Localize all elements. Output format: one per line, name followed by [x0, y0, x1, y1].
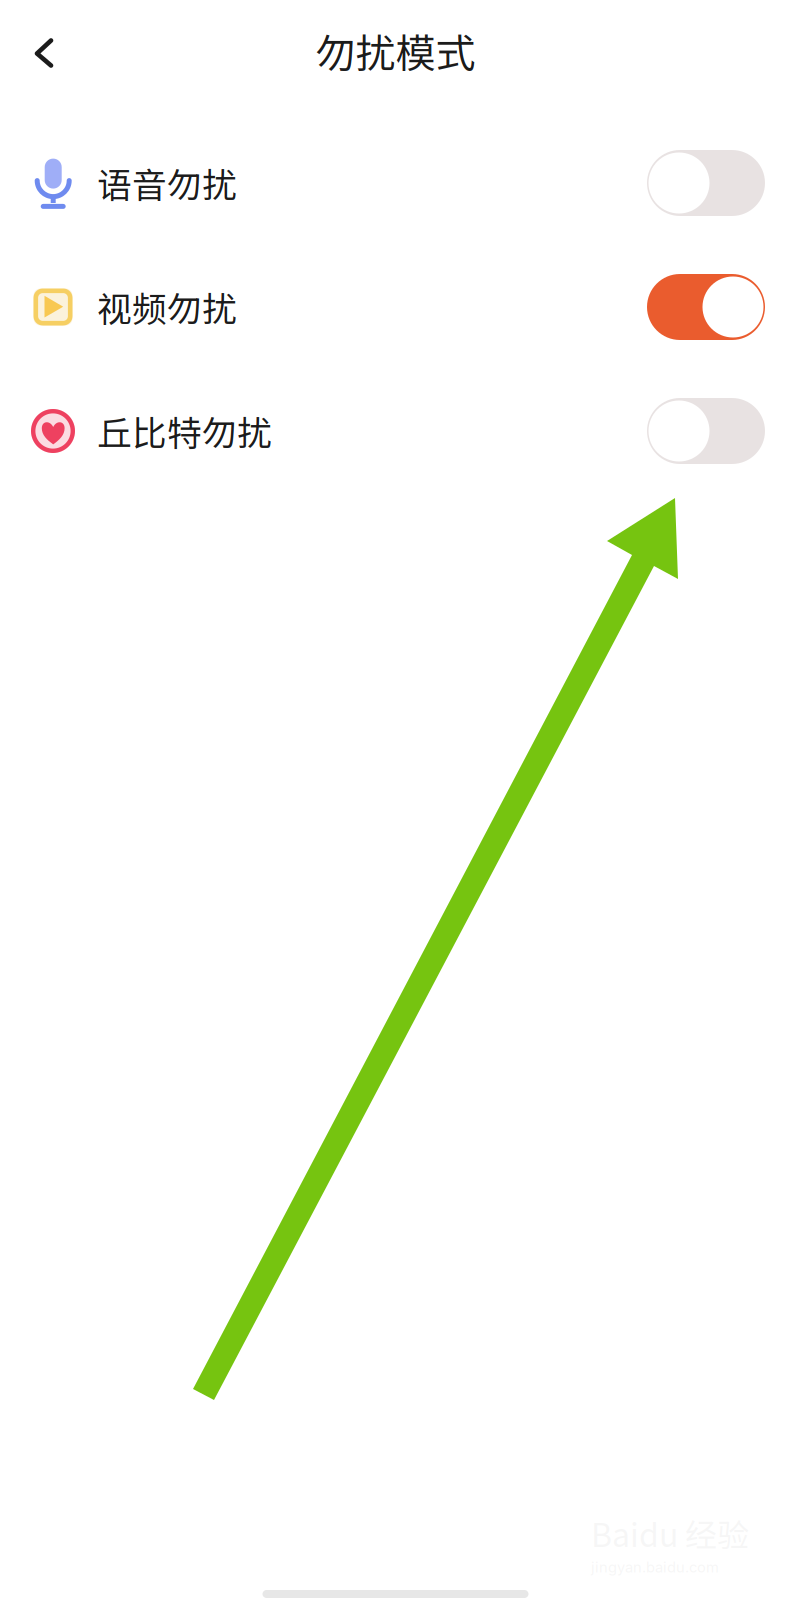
- staticText: Baidu 经验: [591, 1510, 749, 1556]
- button[interactable]: 视频勿扰，已开启: [647, 274, 765, 340]
- staticText: 语音勿扰: [97, 158, 237, 208]
- button[interactable]: 视频勿扰: [0, 245, 791, 369]
- button[interactable]: 丘比特勿扰，已关闭: [647, 398, 765, 464]
- staticText: 勿扰模式: [315, 21, 475, 79]
- staticText: 丘比特勿扰: [97, 406, 272, 456]
- button[interactable]: 丘比特勿扰: [0, 369, 791, 493]
- button[interactable]: 语音勿扰，已关闭: [647, 150, 765, 216]
- button[interactable]: 返回: [16, 31, 74, 89]
- button[interactable]: 语音勿扰: [0, 121, 791, 245]
- staticText: 视频勿扰: [97, 282, 237, 332]
